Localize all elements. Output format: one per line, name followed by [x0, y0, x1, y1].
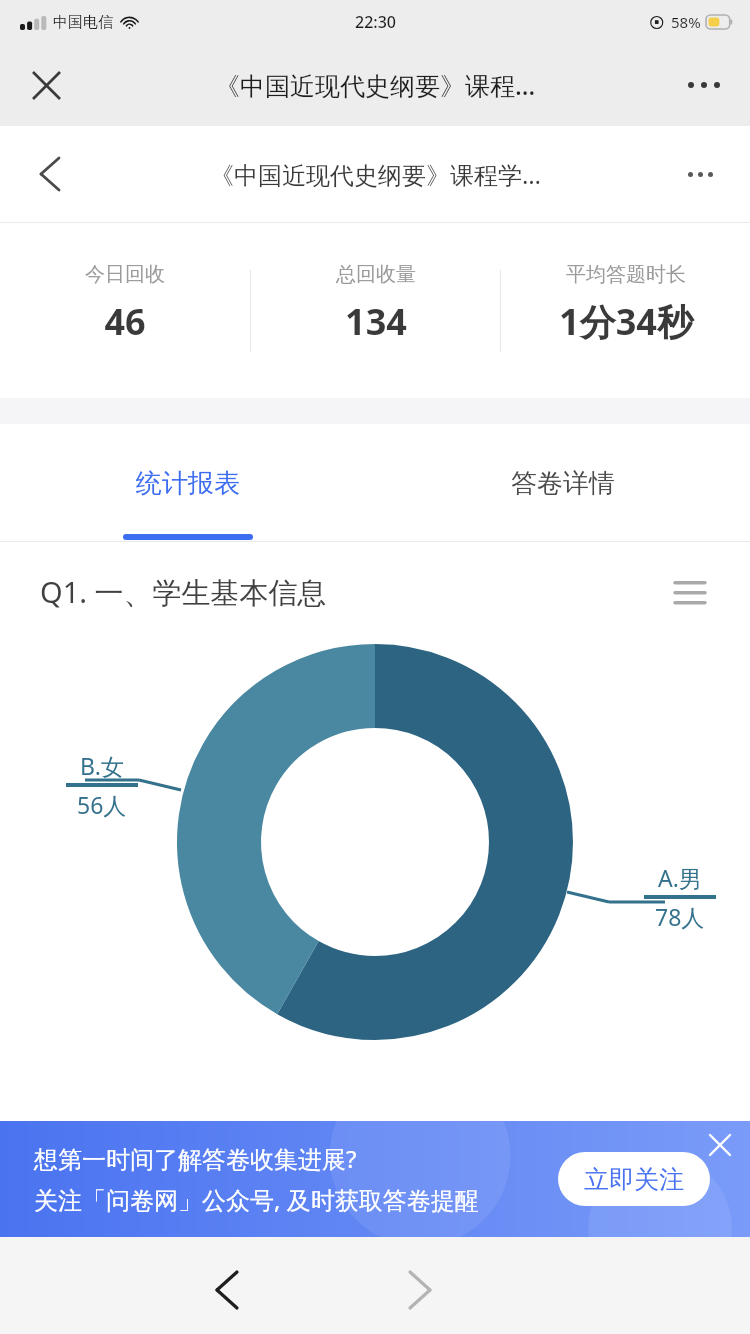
staticText: 56人 [77, 789, 127, 820]
button[interactable]: Page back [189, 1252, 265, 1328]
staticText: 78人 [655, 901, 705, 932]
button[interactable]: 统计报表 [0, 424, 375, 542]
staticText: 22:30 [355, 11, 396, 33]
button[interactable]: 答卷详情 [375, 424, 750, 542]
button[interactable]: Chart options menu [664, 566, 716, 618]
staticText: 平均答题时长 [566, 262, 686, 287]
button[interactable]: 想第一时间了解答卷收集进展? [0, 1121, 750, 1237]
staticText: 中国电信 [53, 13, 113, 32]
staticText: 答卷详情 [511, 467, 615, 500]
staticText: 134 [345, 297, 407, 346]
staticText: 想第一时间了解答卷收集进展? [34, 1142, 357, 1175]
staticText: 总回收量 [336, 262, 416, 287]
staticText: A.男 [658, 862, 702, 893]
staticText: 立即关注 [584, 1164, 684, 1195]
staticText: 统计报表 [136, 467, 240, 500]
staticText: 《中国近现代史纲要》课程… [215, 68, 536, 102]
staticText: 《中国近现代史纲要》课程学… [210, 158, 541, 191]
staticText: Q1. 一、学生基本信息 [40, 572, 327, 612]
staticText: B.女 [80, 750, 124, 781]
staticText: 46 [104, 297, 146, 346]
staticText: 关注「问卷网」公众号, 及时获取答卷提醒 [34, 1183, 479, 1216]
staticText: 58% [671, 12, 701, 32]
button[interactable]: More [672, 146, 728, 202]
button[interactable]: 立即关注 [558, 1152, 710, 1206]
staticText: 今日回收 [85, 262, 165, 287]
staticText: 1分34秒 [559, 297, 693, 346]
button[interactable]: More options [676, 57, 732, 113]
button[interactable]: Page forward [382, 1252, 458, 1328]
button[interactable]: Back [22, 146, 78, 202]
button[interactable]: Close [18, 57, 74, 113]
button[interactable]: Close banner [700, 1125, 740, 1165]
